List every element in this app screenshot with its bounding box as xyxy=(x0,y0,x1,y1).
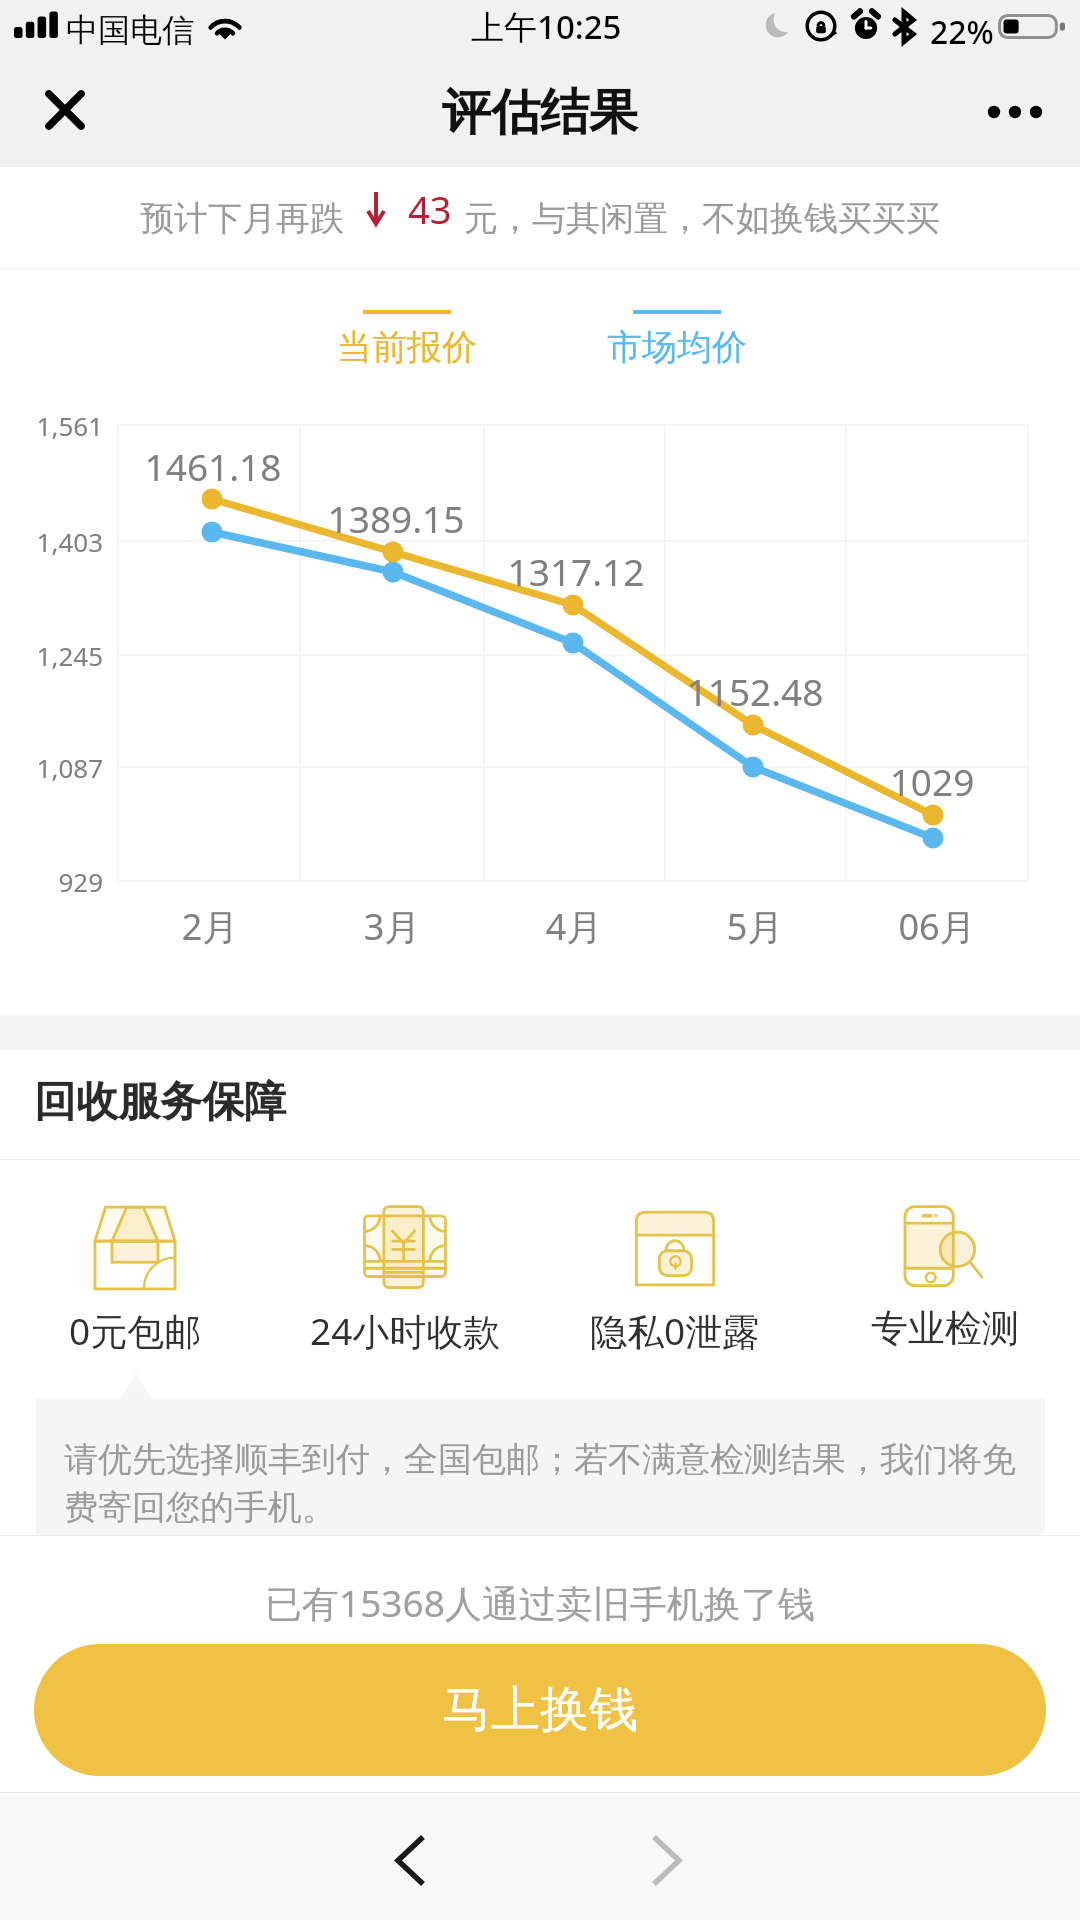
staticText: 回收服务保障 xyxy=(34,1076,286,1129)
staticText: 隐私0泄露 xyxy=(590,1305,760,1356)
button[interactable]: 专业检测 xyxy=(810,1160,1080,1399)
staticText: 2月 xyxy=(140,902,280,951)
staticText: 1,245 xyxy=(5,638,103,673)
staticText: 1461.18 xyxy=(103,441,323,491)
staticText: 上午10:25 xyxy=(471,4,622,49)
staticText: 1317.12 xyxy=(466,546,686,596)
staticText: 1029 xyxy=(822,756,1042,806)
staticText: 中国电信 xyxy=(66,10,194,50)
staticText: 1,087 xyxy=(5,750,103,785)
staticText: 06月 xyxy=(867,902,1007,951)
staticText: 1,403 xyxy=(5,524,103,559)
staticText: 929 xyxy=(5,864,103,899)
button[interactable]: Close xyxy=(30,75,100,145)
staticText: 请优先选择顺丰到付，全国包邮；若不满意检测结果，我们将免费寄回您的手机。 xyxy=(64,1438,1029,1529)
button[interactable]: Back xyxy=(366,1816,454,1904)
staticText: 0元包邮 xyxy=(69,1305,202,1356)
staticText: 1389.15 xyxy=(286,493,506,543)
button[interactable]: 马上换钱 xyxy=(34,1644,1046,1776)
button[interactable]: 隐私0泄露 xyxy=(540,1160,810,1399)
button[interactable]: 0元包邮 xyxy=(0,1160,270,1399)
staticText: 评估结果 xyxy=(442,82,638,144)
staticText: 当前报价 xyxy=(337,325,477,369)
staticText: 3月 xyxy=(322,902,462,951)
button[interactable]: More options xyxy=(966,82,1056,144)
staticText: 市场均价 xyxy=(607,325,747,369)
staticText: 1152.48 xyxy=(645,666,865,716)
button[interactable]: 24小时收款 xyxy=(270,1160,540,1399)
staticText: 22% xyxy=(930,10,994,54)
staticText: 专业检测 xyxy=(871,1305,1019,1352)
staticText: 已有15368人通过卖旧手机换了钱 xyxy=(265,1577,815,1628)
staticText: 马上换钱 xyxy=(442,1679,638,1741)
button[interactable]: Forward xyxy=(622,1816,710,1904)
staticText: 4月 xyxy=(504,902,644,951)
staticText: 元，与其闲置，不如换钱买买买 xyxy=(464,197,940,240)
staticText: 5月 xyxy=(685,902,825,951)
staticText: 预计下月再跌 xyxy=(140,197,344,240)
staticText: 1,561 xyxy=(5,408,103,443)
staticText: 24小时收款 xyxy=(310,1305,501,1356)
staticText: 43 xyxy=(408,183,452,235)
